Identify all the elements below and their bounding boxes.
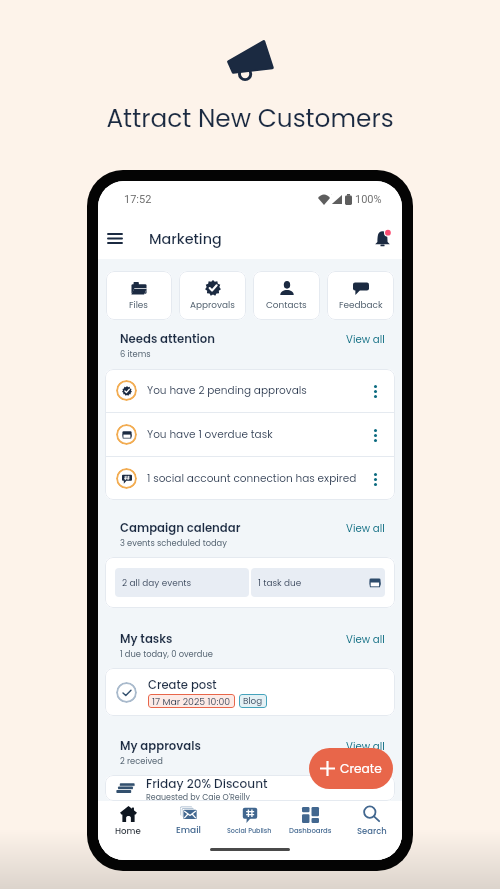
button[interactable]: 1 task due — [251, 568, 385, 597]
button[interactable]: You have 2 pending approvals — [105, 369, 395, 412]
staticText: Approvals — [190, 299, 235, 311]
staticText: 3 events scheduled today — [120, 537, 227, 549]
button[interactable]: More options — [363, 467, 387, 491]
button[interactable]: Social Publish — [219, 801, 280, 841]
staticText: Blog — [243, 695, 263, 707]
staticText: Contacts — [266, 299, 307, 311]
staticText: View all — [346, 332, 385, 346]
button[interactable]: View all — [346, 632, 385, 646]
staticText: 1 social account connection has expired — [147, 471, 363, 486]
staticText: View all — [346, 739, 385, 753]
staticText: 17:52 — [124, 193, 152, 206]
button[interactable]: Friday 20% Discount — [105, 775, 395, 801]
staticText: Requested by Caie O'Reilly — [146, 792, 250, 801]
button[interactable]: Feedback — [327, 271, 394, 320]
staticText: Create post — [148, 677, 217, 693]
button[interactable]: View all — [346, 332, 385, 346]
button[interactable]: Create post — [105, 668, 395, 716]
staticText: Dashboards — [289, 826, 332, 836]
staticText: Home — [115, 825, 141, 837]
button[interactable]: Dashboards — [280, 801, 341, 841]
staticText: 2 received — [120, 755, 163, 767]
staticText: Feedback — [339, 299, 383, 311]
button[interactable]: Home — [98, 801, 158, 841]
staticText: View all — [346, 632, 385, 646]
button[interactable]: View all — [346, 739, 385, 753]
staticText: Needs attention — [120, 331, 215, 347]
staticText: Email — [176, 824, 201, 837]
button[interactable]: Create — [309, 748, 393, 789]
button[interactable]: More options — [363, 379, 387, 403]
staticText: Marketing — [149, 229, 222, 249]
staticText: 1 due today, 0 overdue — [120, 648, 213, 660]
staticText: Friday 20% Discount — [146, 775, 268, 792]
button[interactable]: Files — [106, 271, 172, 320]
staticText: My tasks — [120, 631, 173, 647]
staticText: Create — [340, 760, 382, 777]
staticText: View all — [346, 521, 385, 535]
staticText: 2 all day events — [122, 577, 192, 589]
button[interactable]: Email — [158, 801, 219, 841]
staticText: My approvals — [120, 738, 201, 754]
button[interactable]: View all — [346, 521, 385, 535]
staticText: You have 2 pending approvals — [147, 383, 363, 398]
button[interactable]: Open navigation menu — [98, 218, 132, 259]
staticText: Files — [129, 299, 149, 311]
staticText: You have 1 overdue task — [147, 427, 363, 442]
button[interactable]: More options — [363, 423, 387, 447]
button[interactable]: Approvals — [179, 271, 246, 320]
staticText: 100% — [355, 193, 382, 206]
staticText: 6 items — [120, 348, 151, 360]
staticText: Attract New Customers — [106, 101, 394, 136]
button[interactable]: 1 social account connection has expired — [105, 457, 395, 500]
button[interactable]: You have 1 overdue task — [105, 413, 395, 456]
staticText: 1 task due — [258, 577, 302, 589]
staticText: Campaign calendar — [120, 520, 241, 536]
staticText: Social Publish — [227, 826, 272, 835]
button[interactable]: 2 all day events — [115, 568, 249, 597]
staticText: Search — [357, 825, 387, 837]
staticText: 17 Mar 2025 10:00 — [152, 695, 231, 708]
button[interactable]: Notifications — [362, 218, 402, 259]
button[interactable]: Contacts — [253, 271, 320, 320]
button[interactable]: Search — [341, 801, 402, 841]
